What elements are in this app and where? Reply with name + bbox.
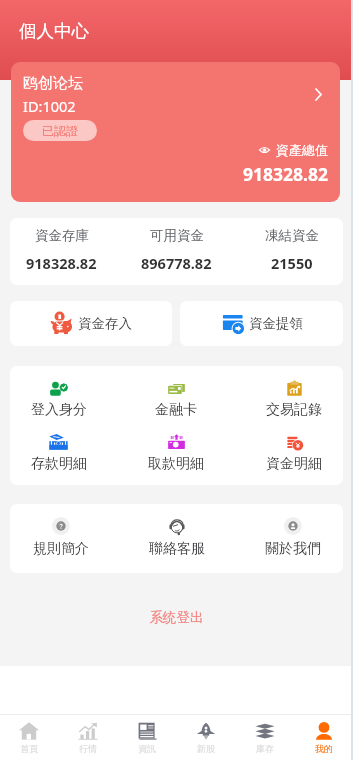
staticText: 918328.82 — [243, 162, 328, 186]
staticText: 金融卡 — [155, 401, 197, 419]
button[interactable]: 登入身分 — [0, 380, 117, 419]
staticText: 資金存庫 — [35, 227, 89, 244]
button[interactable]: 資金存入 — [10, 301, 172, 346]
staticText: 庫存 — [256, 743, 274, 754]
staticText: 資金明細 — [266, 455, 322, 473]
staticText: 資訊 — [138, 743, 156, 754]
staticText: 資金提領 — [249, 315, 303, 332]
staticText: 896778.82 — [141, 253, 212, 273]
button[interactable]: 資金存庫 — [4, 227, 119, 273]
button[interactable]: 我的 — [294, 715, 353, 760]
button[interactable]: 存款明細 — [0, 434, 117, 473]
button[interactable]: 交易記錄 — [235, 380, 353, 419]
button[interactable]: 系统登出 — [0, 609, 353, 626]
button[interactable]: 資訊 — [117, 715, 176, 760]
staticText: 新股 — [197, 743, 215, 754]
staticText: 行情 — [79, 743, 97, 754]
staticText: 可用資金 — [150, 227, 204, 244]
button[interactable]: 鸥创论坛 — [11, 62, 340, 202]
button[interactable]: 首頁 — [0, 715, 58, 760]
staticText: 聯絡客服 — [149, 540, 205, 558]
staticText: 首頁 — [20, 743, 38, 754]
staticText: 鸥创论坛 — [23, 74, 83, 93]
staticText: ID:1002 — [23, 96, 76, 116]
button[interactable]: 金融卡 — [117, 380, 235, 419]
button[interactable]: 取款明細 — [117, 434, 235, 473]
staticText: 交易記錄 — [266, 401, 322, 419]
staticText: 關於我們 — [265, 540, 321, 558]
staticText: 我的 — [315, 743, 333, 754]
button[interactable]: 資金提領 — [180, 301, 343, 346]
button[interactable]: 行情 — [58, 715, 117, 760]
button[interactable]: 資金明細 — [235, 434, 353, 473]
button[interactable]: 可用資金 — [119, 227, 234, 273]
button[interactable]: 關於我們 — [235, 517, 351, 558]
button[interactable]: 聯絡客服 — [119, 517, 235, 558]
staticText: 規則簡介 — [33, 540, 89, 558]
button[interactable]: 庫存 — [235, 715, 294, 760]
other: Account details — [315, 88, 322, 101]
staticText: 21550 — [271, 253, 313, 273]
staticText: 已認證 — [42, 123, 78, 138]
staticText: 個人中心 — [19, 20, 89, 42]
staticText: 資金存入 — [78, 315, 132, 332]
staticText: 凍結資金 — [265, 227, 319, 244]
staticText: 資產總值 — [276, 142, 328, 158]
staticText: 918328.82 — [26, 253, 97, 273]
button[interactable]: 凍結資金 — [234, 227, 349, 273]
staticText: 存款明細 — [31, 455, 87, 473]
button[interactable]: 規則簡介 — [2, 517, 119, 558]
staticText: 登入身分 — [31, 401, 87, 419]
staticText: 取款明細 — [148, 455, 204, 473]
button[interactable]: 新股 — [176, 715, 235, 760]
